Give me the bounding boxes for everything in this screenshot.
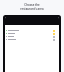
button[interactable] [5,29,59,32]
button[interactable] [5,32,59,35]
staticText: restaurant's area [20,7,44,11]
button[interactable] [5,38,59,41]
button[interactable] [5,35,59,38]
staticText: Choose the [24,3,40,7]
